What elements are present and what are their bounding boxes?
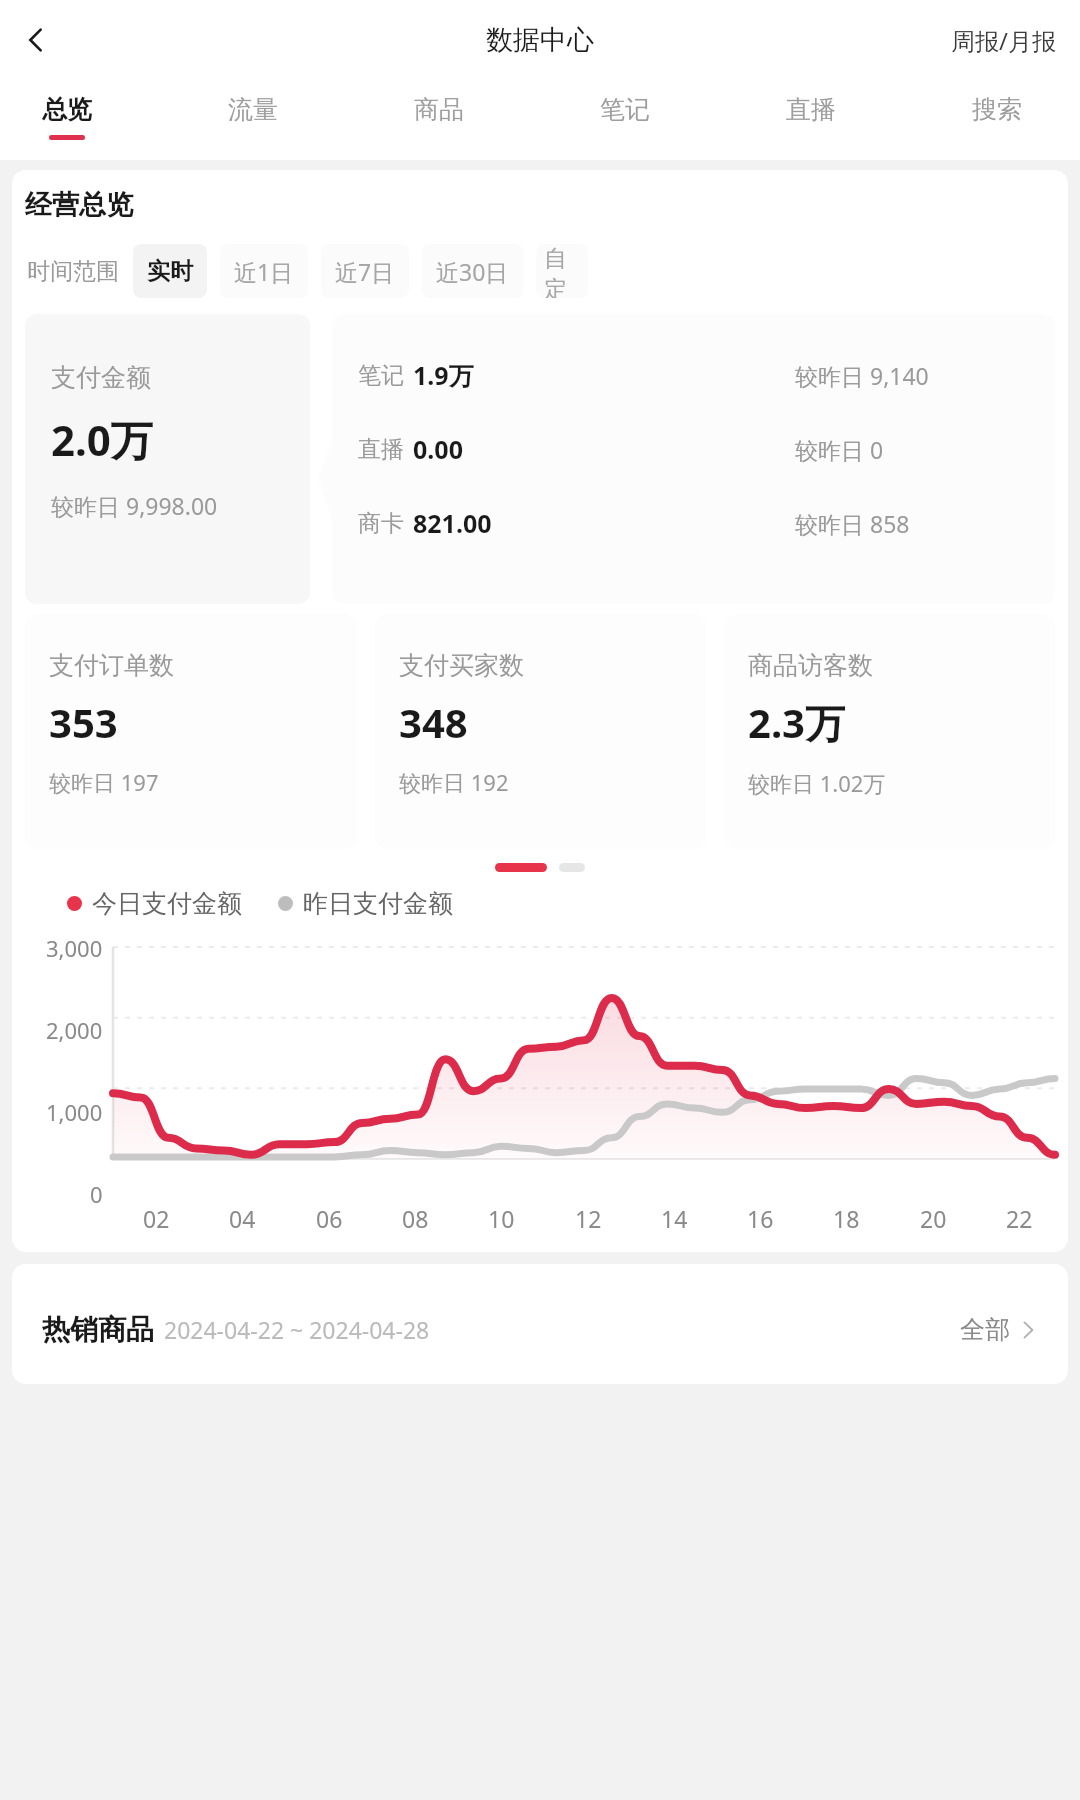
staticText: 08 — [402, 1203, 429, 1234]
button[interactable]: 支付买家数 — [375, 614, 706, 849]
staticText: 0.00 — [413, 432, 463, 466]
button[interactable]: 全部 — [954, 1308, 1044, 1351]
staticText: 时间范围 — [27, 257, 119, 286]
staticText: 2.3万 — [748, 695, 845, 750]
staticText: 今日支付金额 — [92, 888, 242, 919]
staticText: 近7日 — [335, 256, 395, 287]
staticText: 20 — [920, 1203, 947, 1234]
staticText: 近1日 — [234, 256, 294, 287]
button[interactable]: 支付金额 — [25, 314, 310, 604]
staticText: 昨日支付金额 — [303, 888, 453, 919]
button[interactable]: 笔记 — [332, 314, 1055, 604]
staticText: 数据中心 — [486, 23, 594, 57]
button[interactable]: 直播 — [774, 80, 848, 140]
staticText: 较昨日 0 — [795, 434, 884, 465]
staticText: 02 — [143, 1203, 170, 1234]
staticText: 1,000 — [46, 1097, 103, 1127]
button[interactable]: 近7日 — [321, 244, 409, 298]
staticText: 较昨日 9,998.00 — [51, 490, 218, 521]
button[interactable]: Back — [8, 12, 64, 68]
staticText: 2,000 — [46, 1015, 103, 1045]
button[interactable]: 笔记 — [588, 80, 662, 140]
staticText: 10 — [488, 1203, 515, 1234]
staticText: 全部 — [960, 1314, 1010, 1345]
staticText: 直播 — [786, 94, 836, 125]
staticText: 1.9万 — [413, 358, 474, 392]
staticText: 0 — [90, 1179, 103, 1203]
staticText: 支付买家数 — [399, 650, 524, 681]
staticText: 直播 — [358, 435, 404, 464]
staticText: 笔记 — [600, 94, 650, 125]
staticText: 14 — [661, 1203, 688, 1234]
staticText: 总览 — [42, 94, 92, 125]
staticText: 近30日 — [436, 256, 509, 287]
staticText: 搜索 — [972, 94, 1022, 125]
staticText: 热销商品 — [42, 1312, 154, 1347]
button[interactable]: 自定义 — [536, 244, 588, 298]
staticText: 支付金额 — [51, 362, 151, 393]
staticText: 流量 — [228, 94, 278, 125]
staticText: 商卡 — [358, 509, 404, 538]
button[interactable]: 周报/月报 — [945, 16, 1062, 65]
staticText: 22 — [1006, 1203, 1033, 1234]
staticText: 2024-04-22 ~ 2024-04-28 — [164, 1314, 430, 1345]
staticText: 笔记 — [358, 361, 404, 390]
staticText: 353 — [49, 695, 118, 749]
staticText: 较昨日 192 — [399, 767, 509, 797]
button[interactable]: 商品 — [402, 80, 476, 140]
button[interactable]: 近30日 — [422, 244, 523, 298]
staticText: 经营总览 — [25, 188, 133, 222]
staticText: 348 — [399, 695, 468, 749]
staticText: 16 — [747, 1203, 774, 1234]
staticText: 周报/月报 — [951, 24, 1056, 57]
staticText: 较昨日 858 — [795, 508, 910, 539]
staticText: 自定义 — [544, 244, 588, 298]
staticText: 实时 — [147, 257, 193, 286]
staticText: 18 — [833, 1203, 860, 1234]
staticText: 3,000 — [46, 933, 103, 963]
button[interactable]: 搜索 — [960, 80, 1034, 140]
staticText: 较昨日 1.02万 — [748, 768, 886, 798]
staticText: 较昨日 9,140 — [795, 360, 929, 391]
staticText: 支付订单数 — [49, 650, 174, 681]
button[interactable]: 近1日 — [220, 244, 308, 298]
button[interactable]: 总览 — [30, 80, 104, 140]
staticText: 2.0万 — [51, 411, 153, 468]
staticText: 04 — [229, 1203, 256, 1234]
button[interactable]: 支付订单数 — [25, 614, 357, 849]
staticText: 06 — [316, 1203, 343, 1234]
staticText: 12 — [575, 1203, 602, 1234]
staticText: 商品访客数 — [748, 650, 873, 681]
button[interactable]: 流量 — [216, 80, 290, 140]
button[interactable]: 商品访客数 — [724, 614, 1055, 849]
staticText: 821.00 — [413, 506, 492, 540]
staticText: 较昨日 197 — [49, 767, 159, 797]
button[interactable]: 实时 — [133, 244, 207, 298]
staticText: 商品 — [414, 94, 464, 125]
